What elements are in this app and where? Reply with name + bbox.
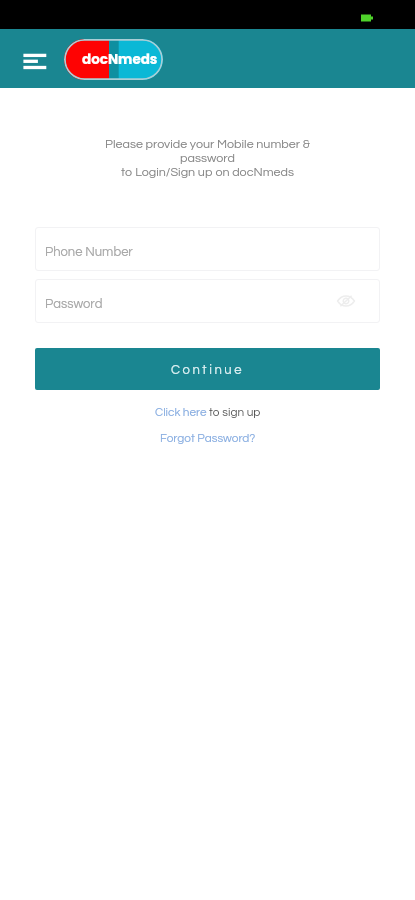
button[interactable]: Password: [35, 279, 380, 323]
staticText: Click here to sign up: [155, 406, 261, 418]
staticText: Please provide your Mobile number & pass…: [90, 138, 325, 178]
staticText: Phone Number: [45, 245, 133, 258]
button[interactable]: Phone Number: [35, 227, 380, 271]
button[interactable]: docNmeds: [64, 39, 163, 80]
staticText: Password: [45, 297, 103, 310]
staticText: Forgot Password?: [160, 432, 256, 444]
button[interactable]: Show password: [336, 291, 356, 311]
button[interactable]: Menu: [19, 43, 51, 75]
button[interactable]: Click here to sign up: [0, 402, 415, 422]
staticText: docNmeds: [82, 50, 158, 69]
button[interactable]: Forgot Password?: [0, 428, 415, 448]
staticText: Continue: [171, 363, 245, 376]
button[interactable]: Continue: [35, 348, 380, 390]
